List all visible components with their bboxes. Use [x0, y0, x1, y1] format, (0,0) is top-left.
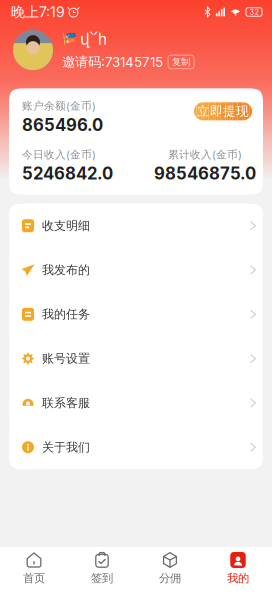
- button[interactable]: 我发布的: [9, 248, 263, 292]
- staticText: վ՝՛h: [80, 30, 107, 49]
- button[interactable]: 关于我们: [9, 425, 263, 469]
- staticText: 今日收入(金币): [22, 148, 96, 161]
- button[interactable]: 联系客服: [9, 381, 263, 425]
- staticText: 我的任务: [42, 307, 90, 322]
- button[interactable]: 签到: [68, 547, 136, 593]
- staticText: 🎏: [62, 32, 77, 46]
- staticText: 首页: [23, 571, 45, 585]
- staticText: 98546875.0: [154, 163, 256, 184]
- staticText: 32: [249, 8, 258, 16]
- staticText: 联系客服: [42, 395, 90, 410]
- button[interactable]: 立即提现: [194, 102, 252, 120]
- staticText: 收支明细: [42, 218, 90, 233]
- button[interactable]: 分佣: [136, 547, 204, 593]
- staticText: 865496.0: [22, 115, 103, 135]
- staticText: 立即提现: [197, 103, 249, 119]
- button[interactable]: 账号设置: [9, 336, 263, 381]
- button[interactable]: 我的: [204, 547, 272, 593]
- staticText: 复制: [172, 56, 190, 68]
- staticText: 签到: [91, 571, 113, 585]
- staticText: 邀请码:73145715: [62, 54, 163, 70]
- staticText: 账户余额(金币): [22, 99, 96, 113]
- staticText: 我发布的: [42, 262, 90, 277]
- staticText: 晚上7:19: [11, 3, 65, 21]
- staticText: 账号设置: [42, 351, 90, 366]
- staticText: 5246842.0: [22, 163, 113, 184]
- button[interactable]: 首页: [0, 547, 68, 593]
- button[interactable]: 我的任务: [9, 292, 263, 336]
- staticText: 我的: [227, 571, 249, 585]
- button[interactable]: 复制: [168, 55, 194, 69]
- staticText: 分佣: [159, 571, 181, 585]
- staticText: 累计收入(金币): [168, 148, 242, 161]
- staticText: 关于我们: [42, 440, 90, 455]
- button[interactable]: 收支明细: [9, 204, 263, 248]
